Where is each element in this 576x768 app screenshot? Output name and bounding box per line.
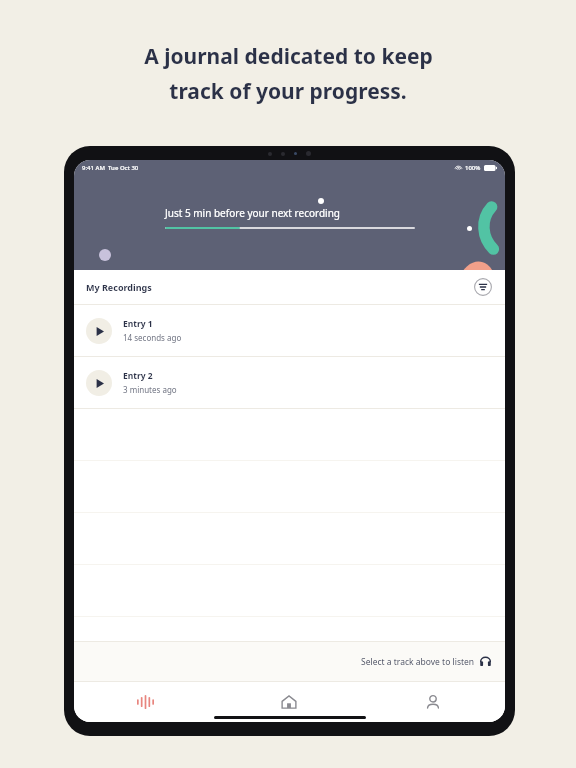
button[interactable]: Profile xyxy=(361,682,505,722)
staticText: 100% xyxy=(465,164,481,172)
staticText: track of your progress. xyxy=(169,77,407,106)
button[interactable]: Entry 2 xyxy=(74,357,505,408)
button[interactable]: Filter recordings xyxy=(473,277,493,297)
staticText: 9:41 AM Tue Oct 30 xyxy=(82,164,139,172)
staticText: Entry 2 xyxy=(123,370,153,382)
button[interactable]: Record xyxy=(74,682,217,722)
staticText: Entry 1 xyxy=(123,318,153,330)
staticText: Select a track above to listen xyxy=(361,656,475,668)
staticText: My Recordings xyxy=(86,281,152,293)
staticText: A journal dedicated to keep xyxy=(144,42,433,71)
staticText: Just 5 min before your next recording xyxy=(165,206,340,220)
button[interactable]: Home xyxy=(217,682,361,722)
button[interactable]: Select a track above to listen xyxy=(74,642,505,681)
staticText: 14 seconds ago xyxy=(123,332,182,343)
staticText: 3 minutes ago xyxy=(123,384,177,395)
button[interactable]: Entry 1 xyxy=(74,305,505,356)
